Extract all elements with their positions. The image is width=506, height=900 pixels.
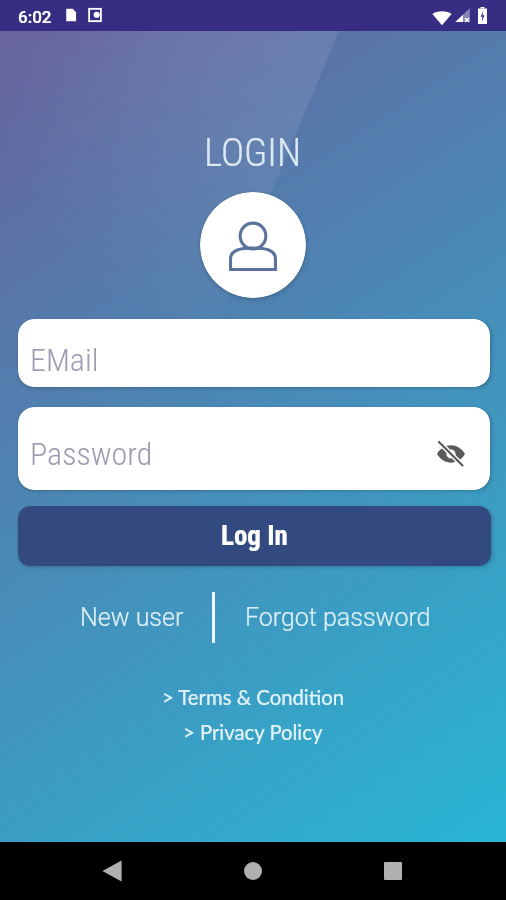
staticText: EMail xyxy=(30,341,99,379)
button[interactable]: Home xyxy=(223,842,283,900)
button[interactable]: Show password xyxy=(428,431,474,477)
staticText: New user xyxy=(80,603,184,632)
staticText: LOGIN xyxy=(204,130,302,176)
button[interactable]: New user xyxy=(66,592,197,643)
staticText: Log In xyxy=(221,520,288,552)
button[interactable]: Recent apps xyxy=(363,842,423,900)
button[interactable]: EMail xyxy=(18,319,490,387)
staticText: Forgot password xyxy=(245,603,431,632)
button[interactable]: Password xyxy=(18,407,490,490)
button[interactable]: Forgot password xyxy=(231,592,444,643)
button[interactable]: > Privacy Policy xyxy=(175,717,331,747)
staticText: 6:02 xyxy=(18,7,52,27)
button[interactable]: Log In xyxy=(18,506,491,566)
button[interactable]: Back xyxy=(82,842,142,900)
staticText: > Privacy Policy xyxy=(183,720,323,744)
staticText: Password xyxy=(30,435,153,473)
staticText: > Terms & Condition xyxy=(162,685,345,709)
button[interactable]: > Terms & Condition xyxy=(154,682,353,712)
